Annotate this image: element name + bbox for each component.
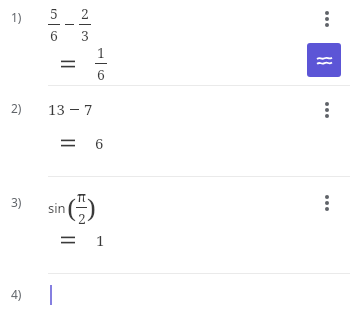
staticText: 2: [81, 4, 89, 23]
staticText: 4): [11, 286, 22, 302]
staticText: 2: [78, 209, 86, 228]
staticText: (: [67, 190, 76, 225]
staticText: 1: [96, 230, 105, 250]
staticText: 3): [11, 194, 22, 210]
staticText: π: [77, 187, 87, 206]
button[interactable]: 4): [0, 274, 350, 320]
staticText: sin: [48, 199, 66, 217]
staticText: 2): [11, 100, 22, 116]
button[interactable]: 2): [0, 86, 350, 176]
staticText: 13: [48, 99, 65, 119]
staticText: 6: [50, 26, 58, 45]
button[interactable]: 1): [0, 0, 350, 85]
staticText: 1): [11, 9, 22, 25]
button[interactable]: More options: [313, 5, 341, 33]
button[interactable]: More options: [313, 96, 341, 124]
staticText: 7: [84, 99, 93, 119]
staticText: 6: [97, 65, 105, 84]
button[interactable]: Show decimal approximation: [307, 43, 341, 77]
staticText: 6: [95, 133, 104, 153]
staticText: ): [87, 190, 96, 225]
button[interactable]: 3): [0, 177, 350, 273]
staticText: 5: [50, 4, 58, 23]
staticText: 1: [97, 43, 105, 62]
staticText: 3: [81, 26, 89, 45]
button[interactable]: More options: [313, 189, 341, 217]
